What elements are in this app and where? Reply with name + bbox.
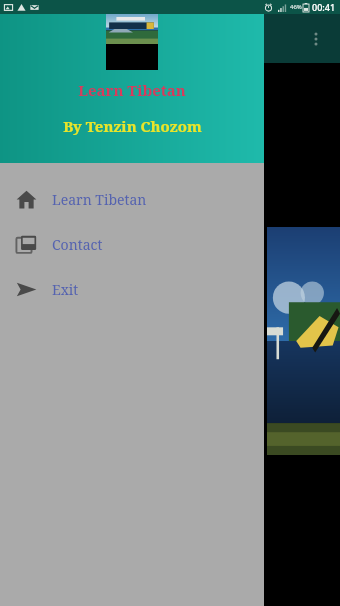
staticText: Exit [52,280,79,299]
staticText: Learn Tibetan [52,190,147,209]
staticText: 00:41 [312,1,336,13]
staticText: Contact [52,235,103,254]
button[interactable]: Contact [0,222,264,267]
button[interactable]: More options [302,25,330,53]
staticText: Learn Tibetan [78,80,186,100]
staticText: 46% [290,3,302,11]
button[interactable]: Learn Tibetan [0,177,264,222]
button[interactable]: Exit [0,267,264,312]
staticText: By Tenzin Chozom [63,116,202,136]
